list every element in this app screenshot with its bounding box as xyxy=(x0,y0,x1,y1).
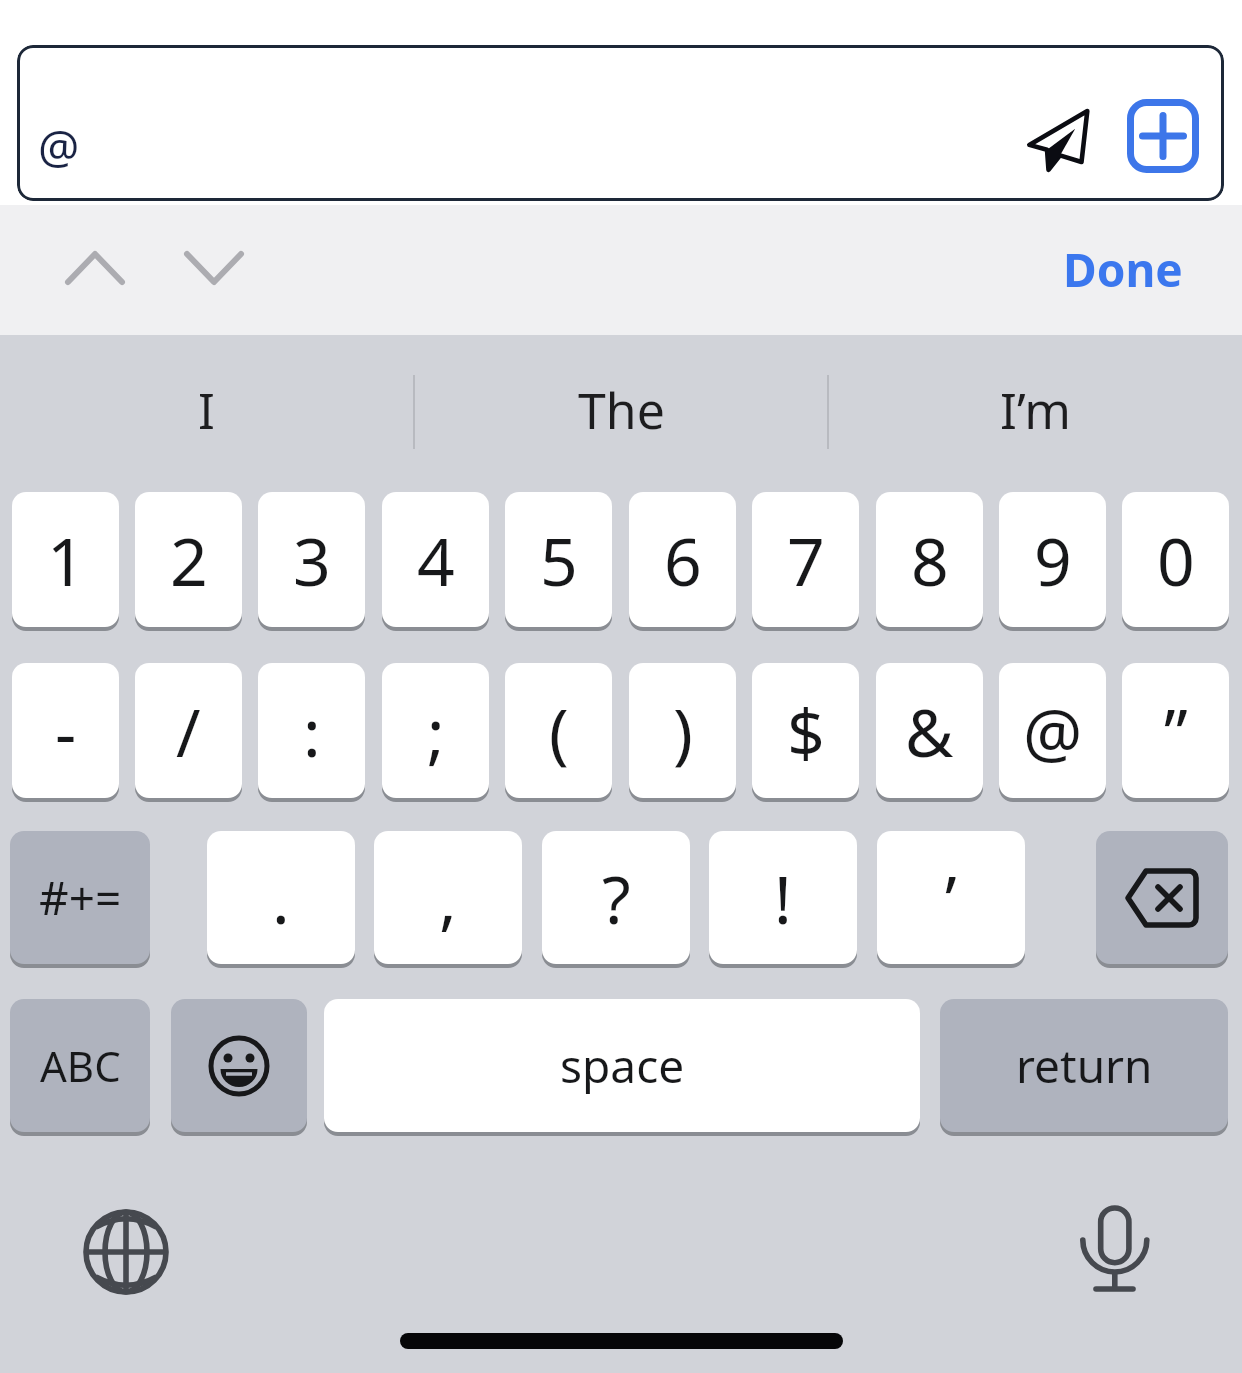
button[interactable] xyxy=(1080,1198,1150,1298)
button[interactable]: 6 xyxy=(629,492,736,627)
button[interactable]: . xyxy=(207,831,355,964)
button[interactable]: @ xyxy=(999,663,1106,798)
staticText: Done xyxy=(1063,238,1183,301)
button[interactable]: 3 xyxy=(258,492,365,627)
button[interactable]: ABC xyxy=(10,999,150,1132)
staticText: 1 xyxy=(47,515,85,605)
staticText: ? xyxy=(602,853,631,943)
button[interactable]: return xyxy=(940,999,1228,1132)
staticText: I’m xyxy=(1000,376,1071,444)
button[interactable]: 5 xyxy=(505,492,612,627)
button[interactable] xyxy=(1127,99,1199,173)
button[interactable]: Done xyxy=(1043,236,1203,302)
button[interactable]: 0 xyxy=(1122,492,1229,627)
staticText: @ xyxy=(38,115,80,178)
staticText: The xyxy=(578,376,665,444)
staticText: 8 xyxy=(911,515,949,605)
button[interactable]: #+= xyxy=(10,831,150,964)
button[interactable]: 9 xyxy=(999,492,1106,627)
button[interactable]: 2 xyxy=(135,492,242,627)
staticText: return xyxy=(1016,1034,1153,1097)
staticText: . xyxy=(272,853,290,943)
staticText: , xyxy=(439,853,457,943)
button[interactable]: The xyxy=(415,355,827,465)
button[interactable] xyxy=(55,240,135,300)
staticText: 4 xyxy=(417,515,455,605)
button[interactable]: ( xyxy=(505,663,612,798)
staticText: & xyxy=(905,686,954,776)
button[interactable]: 8 xyxy=(876,492,983,627)
staticText: $ xyxy=(787,686,825,776)
button[interactable] xyxy=(17,45,1224,201)
button[interactable]: / xyxy=(135,663,242,798)
button[interactable]: space xyxy=(324,999,920,1132)
button[interactable]: ’ xyxy=(877,831,1025,964)
button[interactable] xyxy=(82,1208,172,1298)
staticText: ’ xyxy=(945,853,957,943)
button[interactable]: , xyxy=(374,831,522,964)
button[interactable] xyxy=(1096,831,1228,964)
staticText: @ xyxy=(1023,686,1083,776)
button[interactable]: ) xyxy=(629,663,736,798)
staticText: 6 xyxy=(664,515,702,605)
staticText: I xyxy=(198,376,215,444)
button[interactable]: 7 xyxy=(752,492,859,627)
button[interactable]: - xyxy=(12,663,119,798)
button[interactable]: & xyxy=(876,663,983,798)
staticText: / xyxy=(176,686,201,776)
staticText: ! xyxy=(774,853,792,943)
button[interactable]: ? xyxy=(542,831,690,964)
staticText: 2 xyxy=(170,515,208,605)
staticText: ABC xyxy=(40,1037,121,1094)
button[interactable]: $ xyxy=(752,663,859,798)
staticText: #+= xyxy=(39,866,122,929)
button[interactable]: I xyxy=(0,355,413,465)
staticText: ; xyxy=(427,686,445,776)
button[interactable] xyxy=(1018,100,1098,180)
staticText: 9 xyxy=(1034,515,1072,605)
button[interactable]: ; xyxy=(382,663,489,798)
staticText: ( xyxy=(549,686,569,776)
button[interactable]: : xyxy=(258,663,365,798)
staticText: ) xyxy=(673,686,693,776)
button[interactable]: 4 xyxy=(382,492,489,627)
staticText: 3 xyxy=(293,515,331,605)
button[interactable]: ! xyxy=(709,831,857,964)
button[interactable]: 1 xyxy=(12,492,119,627)
staticText: : xyxy=(303,686,321,776)
staticText: 7 xyxy=(787,515,825,605)
button[interactable]: I’m xyxy=(829,355,1242,465)
staticText: space xyxy=(560,1034,685,1097)
staticText: 5 xyxy=(540,515,578,605)
button[interactable] xyxy=(171,999,307,1132)
staticText: 0 xyxy=(1157,515,1195,605)
button[interactable] xyxy=(174,240,254,300)
button[interactable]: ” xyxy=(1122,663,1229,798)
staticText: - xyxy=(55,686,77,776)
staticText: ” xyxy=(1164,686,1188,776)
